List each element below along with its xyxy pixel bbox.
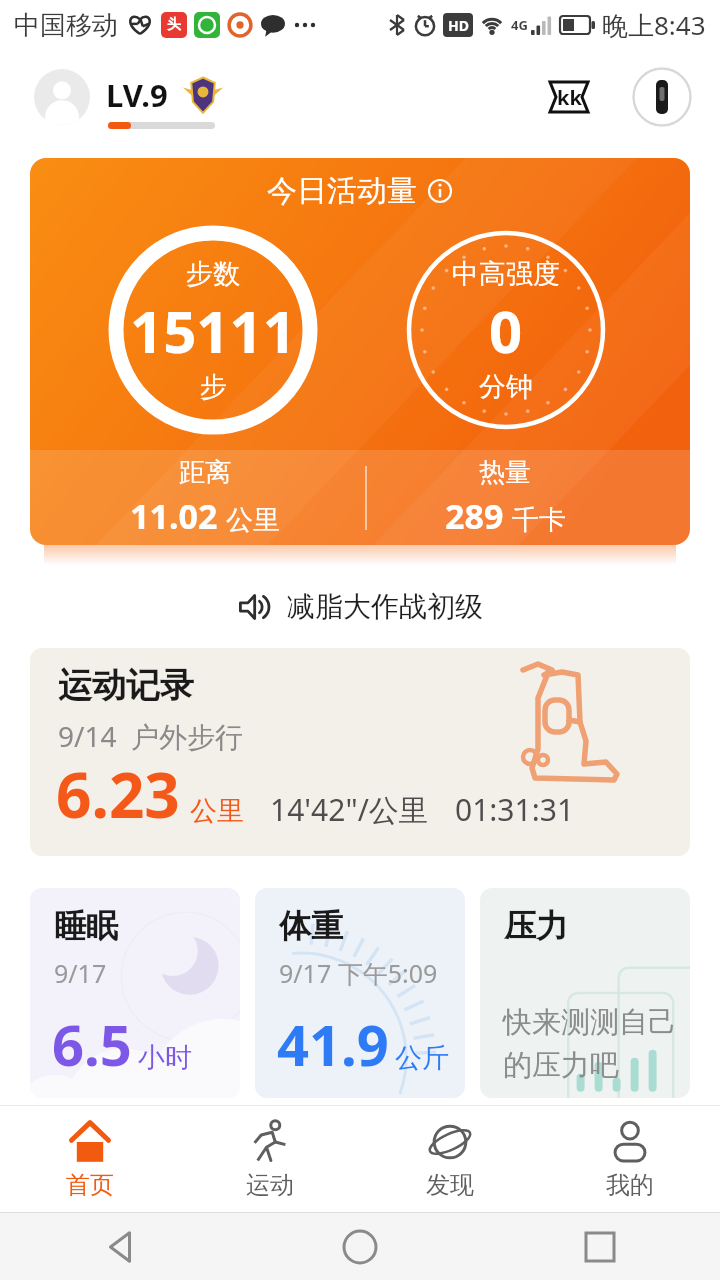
staticText: 距离 bbox=[179, 456, 231, 489]
staticText: 289 bbox=[445, 493, 504, 539]
staticText: 热量 bbox=[479, 456, 531, 489]
staticText: 9/14 户外步行 bbox=[58, 717, 244, 755]
button[interactable] bbox=[240, 1213, 480, 1280]
staticText: 的压力吧 bbox=[503, 1047, 619, 1084]
staticText: 步 bbox=[200, 370, 227, 404]
staticText: 首页 bbox=[66, 1170, 114, 1200]
staticText: 晚上8:43 bbox=[602, 7, 706, 43]
staticText: 今日活动量 bbox=[267, 172, 417, 210]
staticText: 快来测测自己 bbox=[503, 1004, 677, 1041]
staticText: 压力 bbox=[504, 906, 568, 946]
staticText: 15111 bbox=[130, 291, 296, 370]
staticText: 运动记录 bbox=[58, 664, 194, 707]
staticText: 分钟 bbox=[479, 370, 533, 404]
button[interactable] bbox=[480, 1213, 720, 1280]
button[interactable]: LV.9 bbox=[106, 74, 168, 116]
staticText: 中国移动 bbox=[14, 9, 118, 42]
staticText: 运动 bbox=[246, 1170, 294, 1200]
staticText: 11.02 bbox=[130, 493, 218, 539]
staticText: 9/17 bbox=[54, 956, 107, 990]
staticText: 体重 bbox=[279, 906, 343, 946]
staticText: 4G bbox=[511, 16, 528, 34]
staticText: 6.23 bbox=[56, 752, 180, 836]
staticText: 发现 bbox=[426, 1170, 474, 1200]
staticText: 头 bbox=[167, 16, 181, 34]
button[interactable]: 运动 bbox=[180, 1106, 360, 1212]
staticText: 公里 bbox=[190, 794, 244, 828]
staticText: 01:31:31 bbox=[455, 789, 575, 830]
button[interactable]: 减脂大作战初级 bbox=[0, 565, 720, 648]
button[interactable]: 压力 bbox=[480, 888, 690, 1098]
button[interactable]: 首页 bbox=[0, 1106, 180, 1212]
button[interactable]: 今日活动量 bbox=[30, 158, 690, 545]
staticText: 我的 bbox=[606, 1170, 654, 1200]
staticText: 减脂大作战初级 bbox=[287, 589, 483, 624]
button[interactable]: kk bbox=[544, 78, 594, 116]
button[interactable]: 发现 bbox=[360, 1106, 540, 1212]
staticText: 0 bbox=[489, 291, 523, 370]
staticText: 中高强度 bbox=[452, 257, 560, 291]
button[interactable]: 我的 bbox=[540, 1106, 720, 1212]
staticText: 小时 bbox=[138, 1041, 192, 1075]
button[interactable] bbox=[0, 1213, 240, 1280]
button[interactable]: 运动记录 bbox=[30, 648, 690, 856]
staticText: 睡眠 bbox=[54, 906, 118, 946]
staticText: 41.9 bbox=[277, 1006, 389, 1082]
staticText: 14'42"/公里 bbox=[270, 789, 429, 830]
staticText: 公里 bbox=[226, 503, 280, 537]
button[interactable] bbox=[34, 69, 90, 125]
staticText: HD bbox=[448, 16, 469, 35]
button[interactable]: 体重 bbox=[255, 888, 465, 1098]
staticText: kk bbox=[557, 84, 582, 111]
staticText: 步数 bbox=[186, 257, 240, 291]
staticText: 6.5 bbox=[52, 1006, 132, 1082]
button[interactable] bbox=[632, 67, 692, 127]
button[interactable]: 睡眠 bbox=[30, 888, 240, 1098]
staticText: 千卡 bbox=[512, 503, 566, 537]
staticText: 公斤 bbox=[395, 1041, 449, 1075]
staticText: 9/17 下午5:09 bbox=[279, 956, 438, 990]
